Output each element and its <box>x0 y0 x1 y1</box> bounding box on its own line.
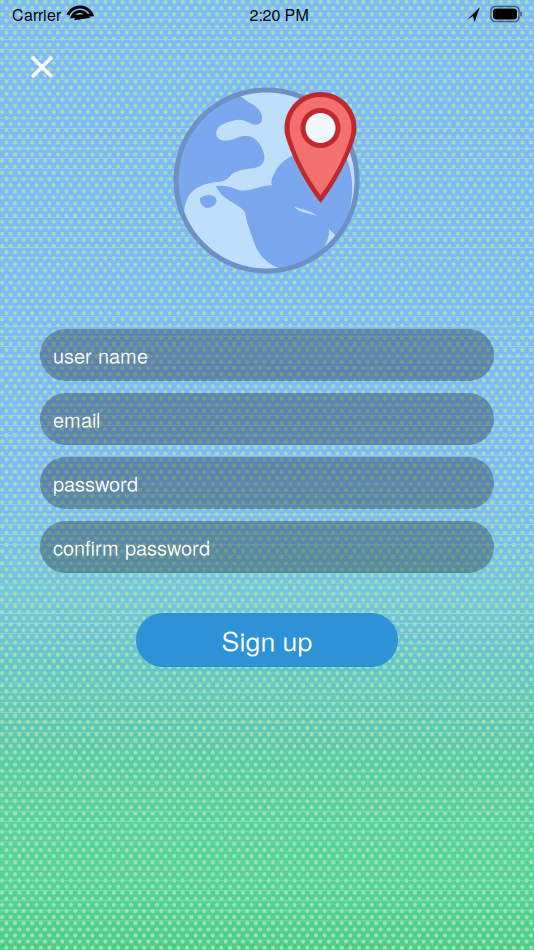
staticText: user name <box>53 341 148 369</box>
button[interactable]: email <box>40 393 494 445</box>
staticText: email <box>53 405 100 433</box>
button[interactable]: user name <box>40 329 494 381</box>
button[interactable]: Sign up <box>136 613 398 667</box>
staticText: Sign up <box>221 621 312 659</box>
staticText: password <box>53 469 138 497</box>
staticText: confirm password <box>53 533 210 561</box>
staticText: 2:20 PM <box>249 2 308 25</box>
button[interactable]: confirm password <box>40 521 494 573</box>
staticText: Carrier <box>12 2 61 25</box>
button[interactable]: Close <box>20 45 64 89</box>
button[interactable]: password <box>40 457 494 509</box>
